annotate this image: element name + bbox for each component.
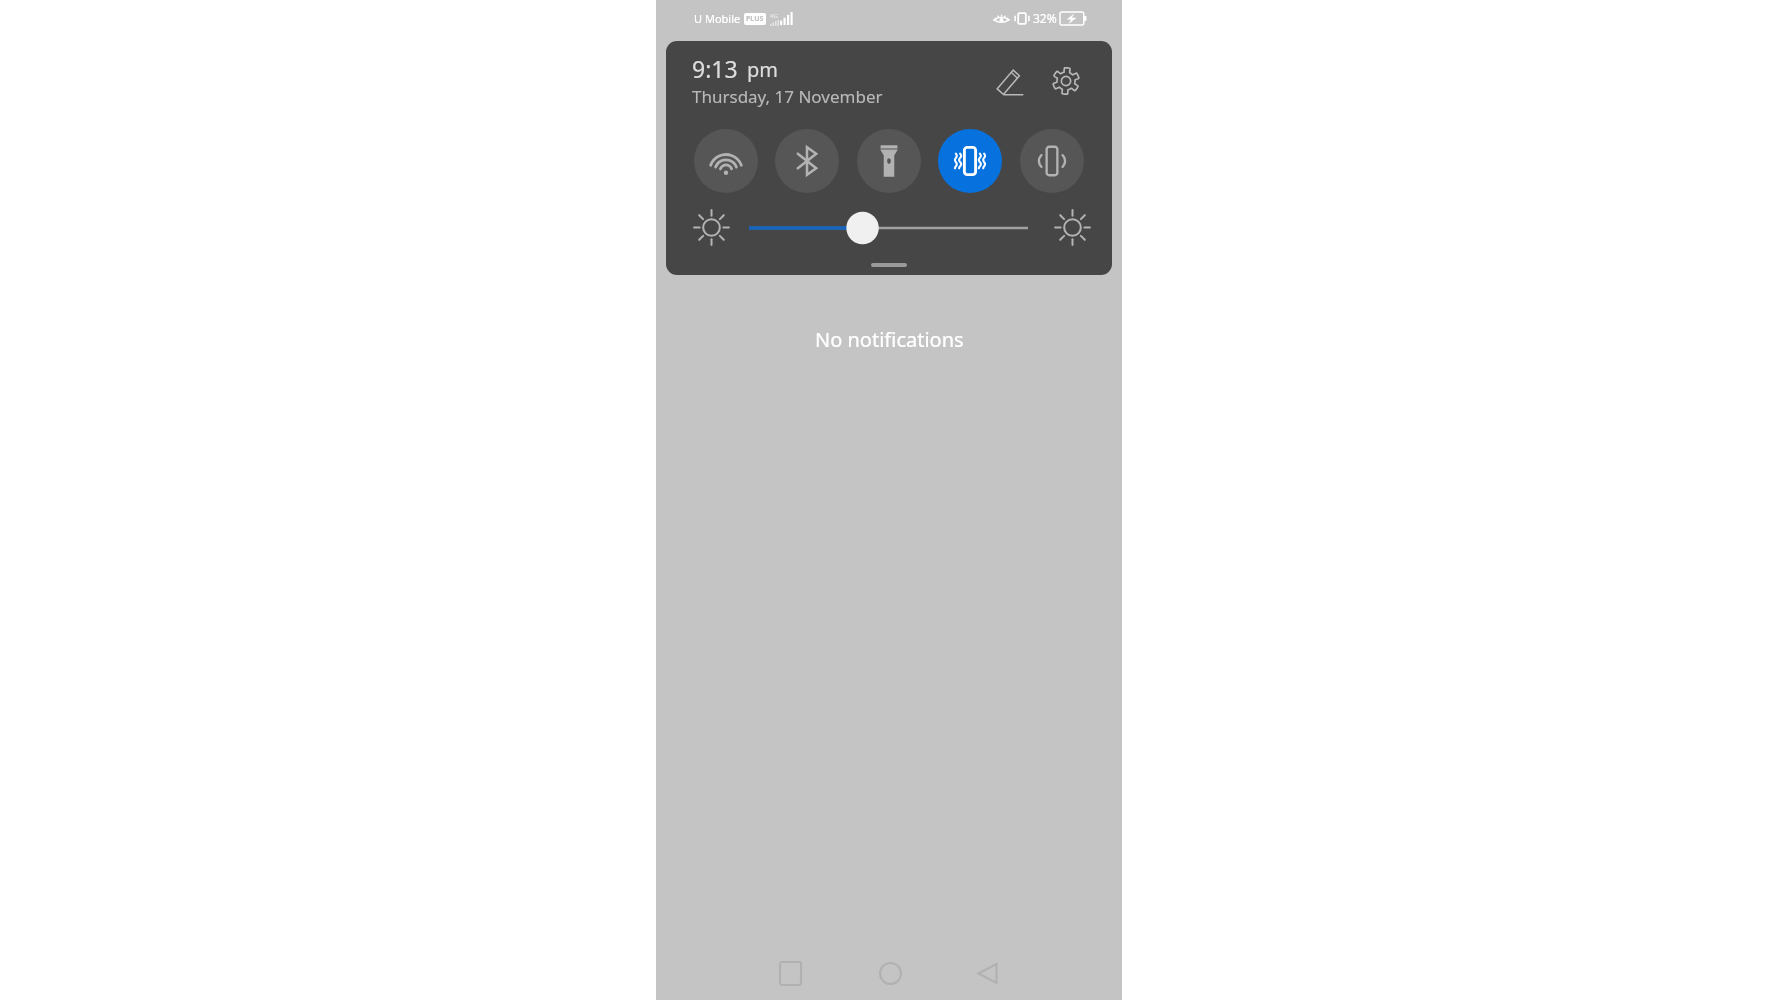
button[interactable]: Edit quick settings [987, 59, 1032, 104]
staticText: Thursday, 17 November [692, 85, 883, 108]
button[interactable]: Bluetooth [775, 129, 839, 193]
staticText: PLUS [746, 14, 764, 24]
button[interactable]: Home [864, 947, 916, 999]
button[interactable]: Brightness [749, 212, 1028, 244]
button[interactable]: Settings [1043, 58, 1088, 103]
button[interactable]: Wi-Fi [694, 129, 758, 193]
button[interactable]: Recent apps [764, 947, 816, 999]
staticText: 32% [1033, 10, 1057, 26]
staticText: U Mobile [694, 11, 741, 26]
staticText: 9:13 [692, 53, 738, 84]
button[interactable]: Flashlight [857, 129, 921, 193]
button[interactable]: Vibrate [938, 129, 1002, 193]
staticText: No notifications [815, 326, 964, 353]
staticText: pm [747, 56, 778, 83]
button[interactable]: Sound mode [1020, 129, 1084, 193]
button[interactable]: Back [961, 947, 1013, 999]
staticText: 4G [770, 12, 778, 20]
